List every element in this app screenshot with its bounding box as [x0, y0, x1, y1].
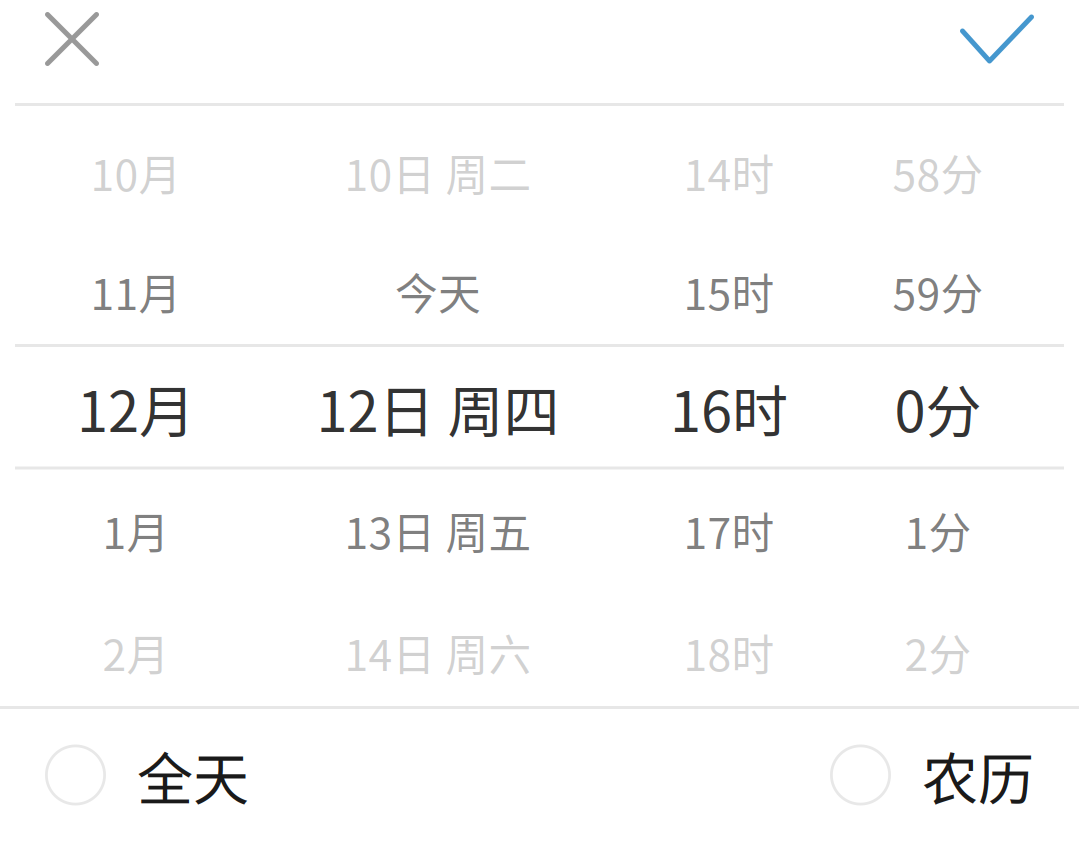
staticText: 59分 [892, 261, 983, 322]
staticText: 14日 周六 [344, 622, 531, 683]
button[interactable]: 14日 周六 [272, 592, 604, 712]
button[interactable]: 15时 [604, 231, 854, 351]
button[interactable]: 58分 [854, 112, 1022, 232]
staticText: 1分 [904, 500, 971, 561]
button[interactable]: 0分 [854, 347, 1022, 467]
button[interactable]: 农历 [830, 735, 1034, 815]
staticText: 16时 [670, 367, 788, 448]
button[interactable]: 全天 [45, 735, 249, 815]
staticText: 15时 [683, 261, 774, 322]
staticText: 10月 [90, 142, 181, 203]
button[interactable]: 今天 [272, 231, 604, 351]
button[interactable]: 13日 周五 [272, 470, 604, 590]
staticText: 13日 周五 [344, 500, 531, 561]
button[interactable]: 14时 [604, 112, 854, 232]
staticText: 1月 [102, 500, 169, 561]
button[interactable]: Close [0, 0, 144, 78]
staticText: 18时 [683, 622, 774, 683]
staticText: 今天 [395, 261, 481, 322]
staticText: 11月 [90, 261, 181, 322]
staticText: 2月 [102, 622, 169, 683]
button[interactable]: 11月 [0, 231, 272, 351]
staticText: 12日 周四 [316, 367, 559, 448]
button[interactable]: 1月 [0, 470, 272, 590]
staticText: 14时 [683, 142, 774, 203]
button[interactable]: 10日 周二 [272, 112, 604, 232]
button[interactable]: 16时 [604, 347, 854, 467]
staticText: 58分 [892, 142, 983, 203]
button[interactable]: 2分 [854, 592, 1022, 712]
button[interactable]: 18时 [604, 592, 854, 712]
button[interactable]: 10月 [0, 112, 272, 232]
button[interactable]: 59分 [854, 231, 1022, 351]
button[interactable]: Confirm [915, 0, 1079, 78]
button[interactable]: 2月 [0, 592, 272, 712]
staticText: 17时 [683, 500, 774, 561]
staticText: 农历 [922, 734, 1034, 816]
button[interactable]: 12月 [0, 347, 272, 467]
staticText: 全天 [137, 734, 249, 816]
button[interactable]: 12日 周四 [272, 347, 604, 467]
staticText: 10日 周二 [344, 142, 531, 203]
button[interactable]: 17时 [604, 470, 854, 590]
staticText: 2分 [904, 622, 971, 683]
button[interactable]: 1分 [854, 470, 1022, 590]
staticText: 12月 [77, 367, 195, 448]
staticText: 0分 [894, 367, 981, 448]
